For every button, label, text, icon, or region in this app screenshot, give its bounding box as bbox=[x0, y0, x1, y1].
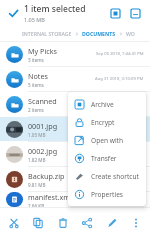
button[interactable]: Select all bbox=[105, 3, 125, 23]
button[interactable]: 0002.jpg bbox=[0, 142, 150, 166]
staticText: Backup.zip bbox=[28, 171, 65, 181]
staticText: WO bbox=[126, 30, 135, 37]
staticText: 0002.jpg bbox=[28, 146, 58, 156]
button[interactable]: Scanned bbox=[0, 92, 150, 116]
staticText: 1.05 MB bbox=[28, 132, 46, 138]
staticText: 5 items bbox=[28, 82, 44, 88]
button[interactable]: Transfer bbox=[68, 149, 146, 167]
button[interactable]: Archive bbox=[68, 95, 146, 113]
staticText: DOCUMENTS bbox=[82, 30, 116, 37]
staticText: Archive bbox=[91, 100, 114, 109]
staticText: Encrypt bbox=[91, 118, 115, 127]
staticText: 9.81 MB bbox=[28, 182, 46, 188]
staticText: Properties bbox=[91, 190, 124, 199]
staticText: 1.82 MB bbox=[28, 157, 46, 163]
button[interactable]: Open with bbox=[68, 131, 146, 149]
button[interactable]: Cut bbox=[3, 212, 25, 234]
staticText: My Picks bbox=[28, 46, 57, 56]
staticText: Aug 31 2018, 3:10:09 PM bbox=[95, 76, 144, 82]
button[interactable]: Create shortcut bbox=[68, 167, 146, 185]
button[interactable]: Properties bbox=[68, 185, 146, 203]
button[interactable]: Rename bbox=[101, 212, 123, 234]
button[interactable]: Delete bbox=[52, 212, 74, 234]
button[interactable]: Notes bbox=[0, 67, 150, 91]
button[interactable]: WO bbox=[126, 30, 135, 37]
staticText: 1.05 MB bbox=[24, 16, 45, 23]
button[interactable]: 0001.jpg bbox=[0, 117, 150, 141]
staticText: manifest.xml bbox=[28, 192, 72, 202]
button[interactable]: INTERNAL STORAGE bbox=[22, 30, 72, 37]
staticText: Sep 05 2018, 7:44:41 PM bbox=[96, 51, 144, 57]
button[interactable]: Encrypt bbox=[68, 113, 146, 131]
button[interactable]: Share bbox=[76, 212, 98, 234]
staticText: 3 items bbox=[28, 57, 44, 63]
staticText: 1 item selected bbox=[24, 3, 86, 15]
staticText: Create shortcut bbox=[91, 172, 139, 181]
button[interactable]: DOCUMENTS bbox=[82, 30, 116, 37]
staticText: 0001.jpg bbox=[28, 121, 58, 131]
button[interactable]: manifest.xml bbox=[0, 192, 150, 207]
button[interactable]: My Picks bbox=[0, 42, 150, 66]
button[interactable]: Backup.zip bbox=[0, 167, 150, 191]
staticText: 2 items bbox=[28, 107, 44, 113]
staticText: Transfer bbox=[91, 154, 117, 163]
button[interactable]: More options bbox=[125, 212, 147, 234]
button[interactable]: Deselect all bbox=[5, 5, 21, 21]
staticText: 2.66 KB bbox=[28, 203, 45, 207]
button[interactable]: Grid view bbox=[125, 3, 145, 23]
staticText: INTERNAL STORAGE bbox=[22, 30, 72, 37]
button[interactable]: Copy bbox=[27, 212, 49, 234]
staticText: Notes bbox=[28, 71, 48, 81]
staticText: Scanned bbox=[28, 96, 57, 106]
staticText: Open with bbox=[91, 136, 124, 145]
